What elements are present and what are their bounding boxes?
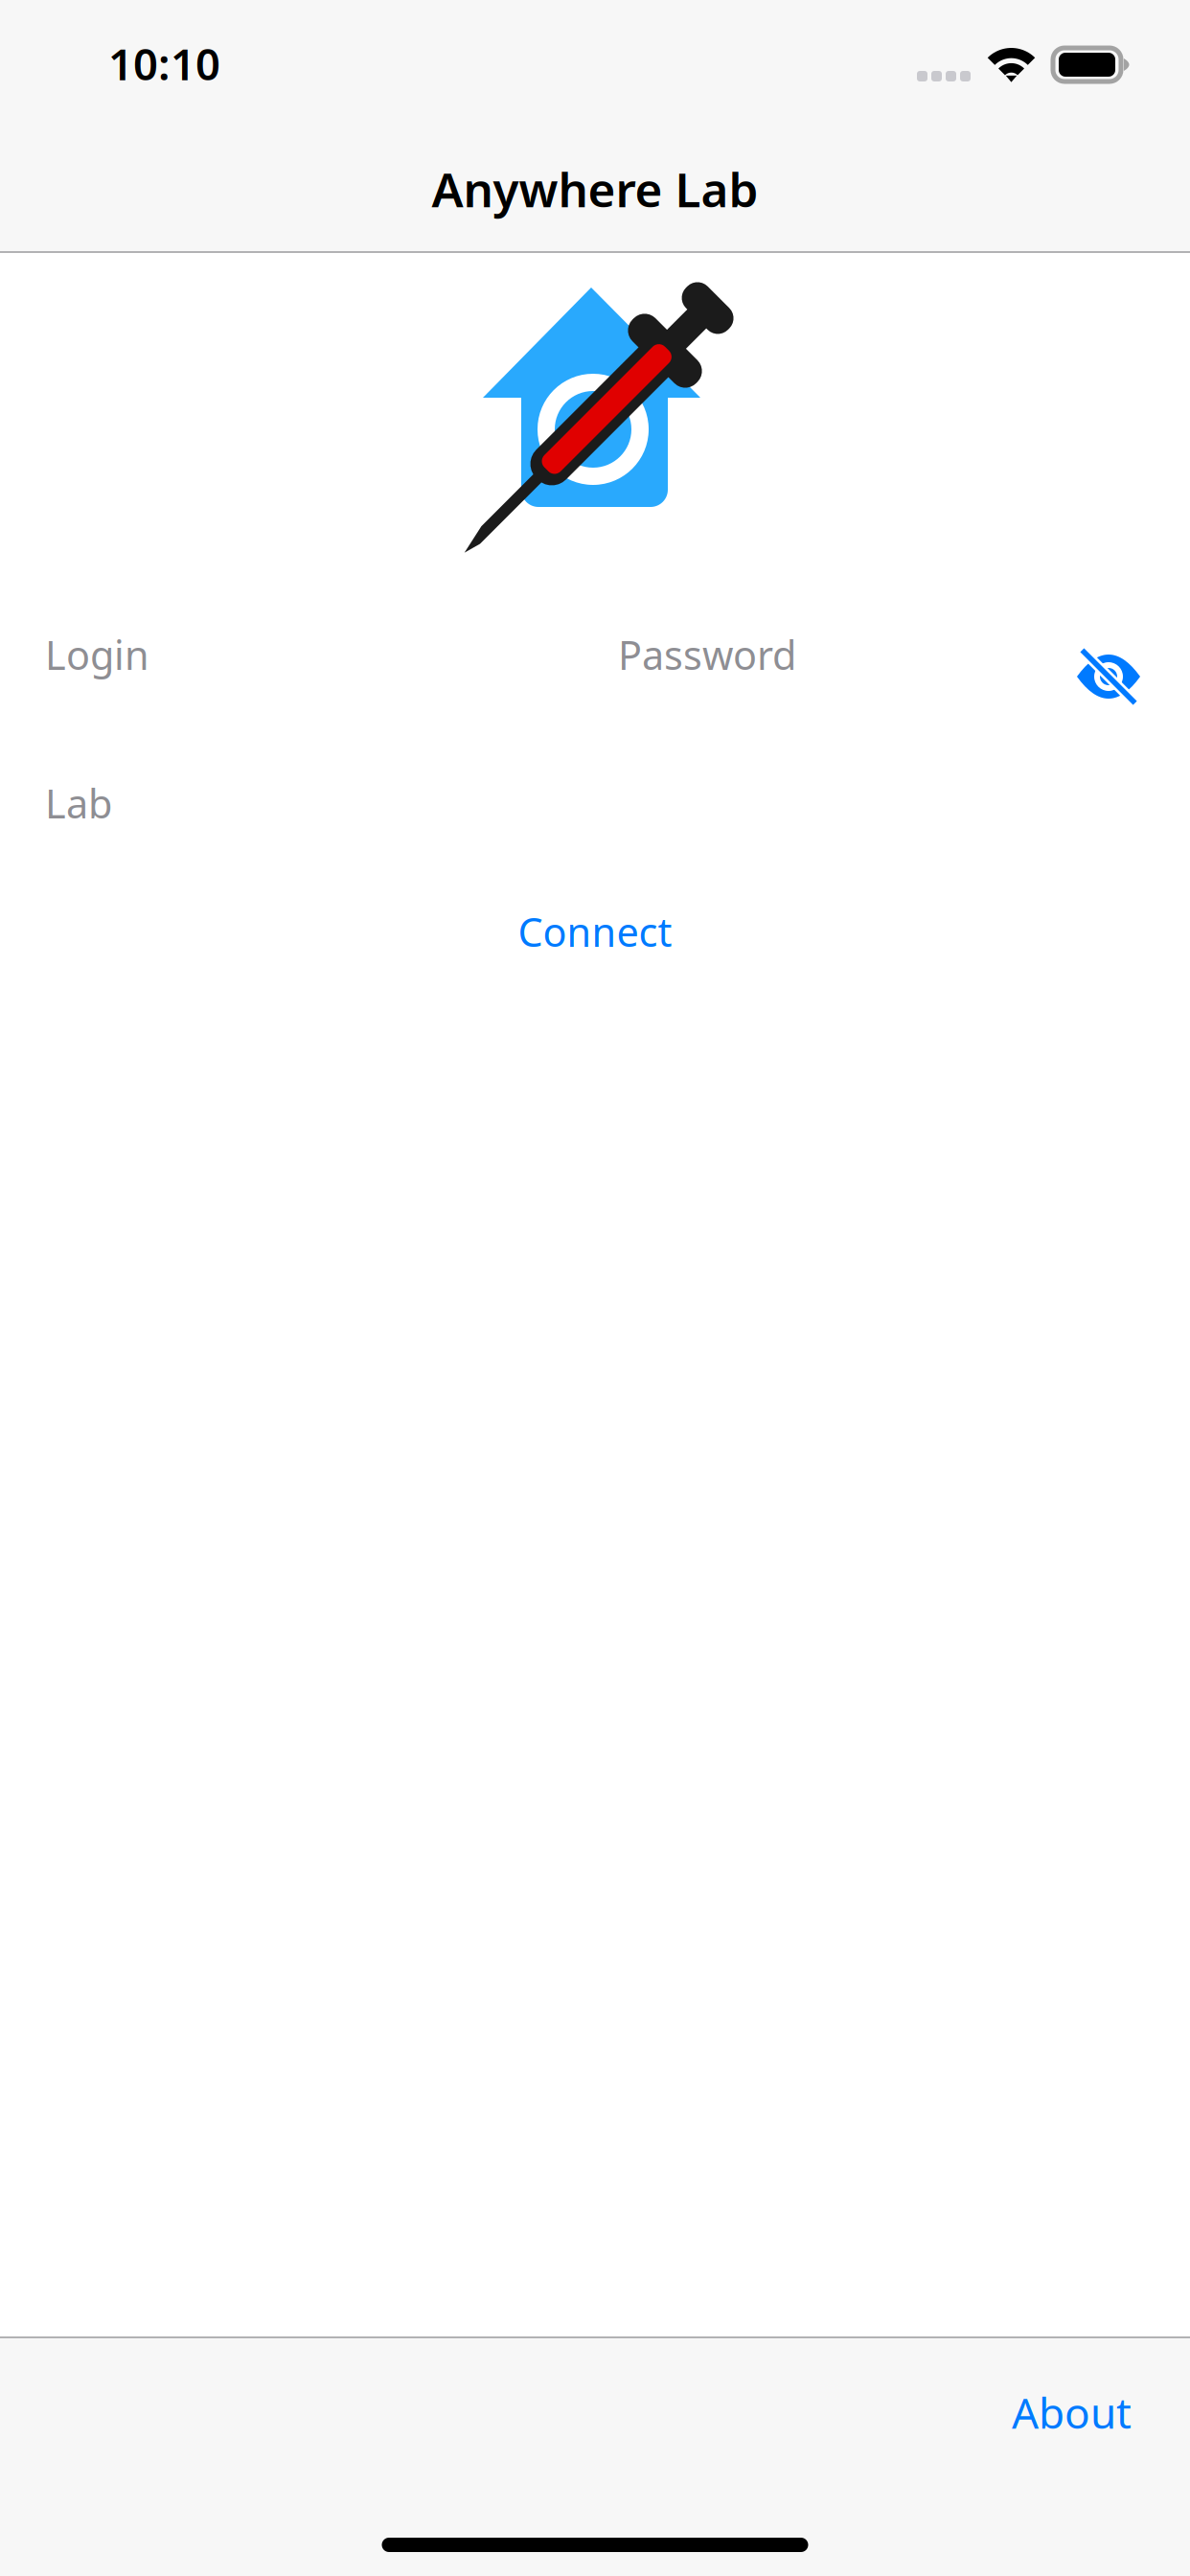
button[interactable]: Login [45, 618, 618, 691]
button[interactable]: About [983, 2363, 1160, 2461]
staticText: Login [45, 628, 149, 681]
staticText: Lab [45, 777, 112, 829]
button[interactable]: Lab [45, 767, 1145, 839]
staticText: Password [618, 628, 796, 681]
staticText: Connect [518, 905, 672, 958]
staticText: About [1012, 2384, 1132, 2440]
button[interactable]: Show password [1064, 632, 1153, 721]
staticText: 10:10 [108, 34, 220, 92]
staticText: Anywhere Lab [432, 157, 758, 220]
button[interactable]: Password [618, 618, 1030, 691]
button[interactable]: Connect [0, 885, 1190, 977]
